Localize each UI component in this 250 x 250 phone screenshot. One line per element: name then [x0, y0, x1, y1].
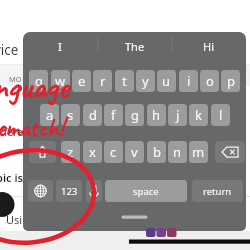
staticText: n — [173, 143, 182, 161]
button[interactable]: y — [136, 70, 155, 92]
button[interactable]: Hi — [171, 35, 245, 57]
staticText: v — [131, 143, 138, 161]
button[interactable]: w — [51, 70, 70, 92]
button[interactable]: Backspace — [215, 141, 245, 163]
staticText: p — [227, 72, 235, 90]
staticText: z — [67, 143, 74, 161]
button[interactable]: n — [168, 141, 187, 163]
staticText: s — [67, 106, 74, 124]
button[interactable]: g — [125, 104, 144, 126]
staticText: a — [46, 106, 54, 124]
staticText: return — [203, 185, 232, 198]
staticText: e — [78, 72, 86, 90]
button[interactable]: u — [157, 70, 176, 92]
staticText: nguage — [0, 65, 69, 108]
button[interactable]: I — [23, 35, 97, 57]
staticText: h — [152, 106, 161, 124]
staticText: ematch! — [0, 112, 64, 144]
button[interactable]: v — [125, 141, 144, 163]
button[interactable]: 123 — [56, 180, 82, 202]
staticText: d — [89, 106, 97, 124]
button[interactable]: k — [189, 104, 208, 126]
button[interactable]: m — [189, 141, 208, 163]
button[interactable]: r — [93, 70, 112, 92]
button[interactable]: return — [192, 180, 243, 202]
staticText: 123 — [61, 185, 78, 198]
staticText: b — [153, 143, 161, 161]
button[interactable]: d — [83, 104, 102, 126]
staticText: i — [187, 72, 191, 90]
staticText: l — [219, 106, 223, 124]
staticText: vice i — [0, 41, 26, 59]
staticText: x — [89, 143, 96, 161]
button[interactable]: a — [40, 104, 59, 126]
button[interactable]: c — [104, 141, 123, 163]
button[interactable]: z — [61, 141, 80, 163]
button[interactable]: t — [115, 70, 134, 92]
staticText: iffere — [0, 125, 23, 139]
button[interactable]: f — [104, 104, 123, 126]
button[interactable]: The — [98, 35, 172, 57]
staticText: c — [110, 143, 117, 161]
staticText: Hi — [203, 39, 214, 54]
staticText: space — [133, 185, 159, 198]
staticText: y — [142, 72, 149, 90]
staticText: g — [131, 106, 139, 124]
button[interactable]: s — [61, 104, 80, 126]
button[interactable]: q — [29, 70, 48, 92]
staticText: u — [162, 72, 171, 90]
staticText: j — [176, 106, 180, 124]
button[interactable]: h — [147, 104, 166, 126]
staticText: f — [111, 106, 116, 124]
staticText: w — [55, 72, 66, 90]
staticText: pic is — [0, 170, 23, 185]
staticText: o — [206, 72, 214, 90]
button[interactable]: p — [221, 70, 240, 92]
button[interactable]: e — [72, 70, 91, 92]
button[interactable]: j — [168, 104, 187, 126]
button[interactable]: Switch keyboard — [28, 180, 53, 202]
button[interactable]: b — [147, 141, 166, 163]
button[interactable]: Shift — [29, 141, 56, 163]
staticText: r — [100, 72, 106, 90]
staticText: I — [58, 39, 62, 54]
button[interactable]: o — [200, 70, 219, 92]
staticText: k — [195, 106, 202, 124]
staticText: q — [35, 72, 43, 90]
staticText: t — [122, 72, 127, 90]
button[interactable]: i — [179, 70, 198, 92]
staticText: Usi — [6, 212, 23, 227]
staticText: The — [125, 39, 145, 54]
staticText: m — [192, 143, 205, 161]
staticText: MO — [9, 74, 22, 84]
button[interactable]: Dictate — [86, 180, 102, 202]
button[interactable]: x — [83, 141, 102, 163]
button[interactable]: space — [105, 180, 187, 202]
button[interactable]: l — [211, 104, 230, 126]
